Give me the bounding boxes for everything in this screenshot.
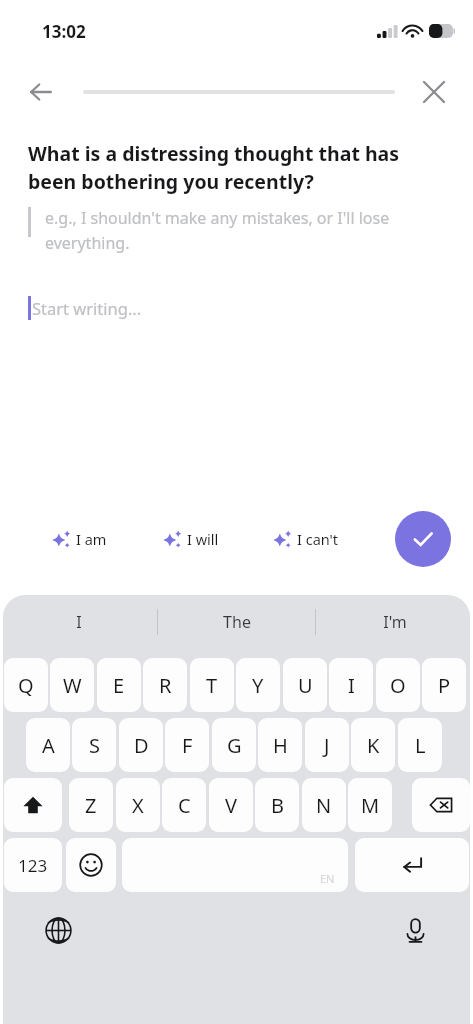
staticText: S [89, 732, 100, 759]
button[interactable]: I will [161, 523, 221, 555]
staticText: E [113, 672, 125, 699]
button[interactable]: The [158, 595, 315, 649]
staticText: I [348, 672, 355, 699]
staticText: X [132, 792, 144, 819]
button[interactable]: S [72, 718, 116, 772]
button[interactable]: P [422, 658, 466, 712]
button[interactable]: I [0, 595, 157, 649]
button[interactable]: B [255, 778, 299, 832]
staticText: M [361, 792, 380, 819]
button[interactable]: I'm [316, 595, 473, 649]
button[interactable]: F [165, 718, 209, 772]
staticText: Q [18, 672, 34, 699]
staticText: A [42, 732, 55, 759]
button[interactable]: 123 [4, 838, 62, 892]
button[interactable]: O [376, 658, 420, 712]
staticText: F [182, 732, 193, 759]
button[interactable]: Backspace [412, 778, 470, 832]
button[interactable]: I [329, 658, 373, 712]
button[interactable]: R [143, 658, 187, 712]
staticText: Y [252, 672, 264, 699]
button[interactable]: Back [18, 69, 64, 115]
staticText: I am [76, 529, 107, 549]
button[interactable]: I can't [271, 523, 341, 555]
staticText: 13:02 [42, 20, 86, 43]
staticText: Z [85, 792, 97, 819]
staticText: What is a distressing thought that has b… [28, 140, 445, 195]
button[interactable]: K [351, 718, 395, 772]
staticText: The [223, 611, 251, 633]
button[interactable]: J [305, 718, 349, 772]
button[interactable]: Space [122, 838, 348, 892]
staticText: K [367, 732, 380, 759]
button[interactable]: H [258, 718, 302, 772]
button[interactable]: W [50, 658, 94, 712]
button[interactable]: Shift [4, 778, 62, 832]
button[interactable]: M [348, 778, 392, 832]
staticText: J [324, 732, 330, 759]
button[interactable]: Close [411, 69, 457, 115]
button[interactable]: G [212, 718, 256, 772]
staticText: B [271, 792, 284, 819]
staticText: H [273, 732, 288, 759]
button[interactable]: E [97, 658, 141, 712]
staticText: N [316, 792, 332, 819]
staticText: V [225, 792, 237, 819]
button[interactable]: Emoji [66, 838, 116, 892]
staticText: R [159, 672, 172, 699]
staticText: P [438, 672, 451, 699]
staticText: I [76, 611, 82, 633]
staticText: L [415, 732, 426, 759]
button[interactable]: N [302, 778, 346, 832]
staticText: T [206, 672, 218, 699]
staticText: e.g., I shouldn't make any mistakes, or … [45, 207, 445, 253]
staticText: C [178, 792, 191, 819]
button[interactable]: X [116, 778, 160, 832]
button[interactable]: V [209, 778, 253, 832]
button[interactable]: Submit [395, 511, 451, 567]
button[interactable]: Enter [355, 838, 469, 892]
button[interactable]: Voice input [391, 906, 439, 954]
staticText: I can't [297, 529, 339, 549]
staticText: Start writing... [32, 297, 142, 319]
staticText: I will [187, 529, 219, 549]
button[interactable]: D [119, 718, 163, 772]
button[interactable]: Change language [34, 906, 82, 954]
staticText: O [390, 672, 406, 699]
button[interactable]: Q [4, 658, 48, 712]
button[interactable]: Y [236, 658, 280, 712]
staticText: I'm [383, 611, 407, 633]
button[interactable]: Z [69, 778, 113, 832]
staticText: EN [320, 871, 335, 886]
button[interactable]: U [283, 658, 327, 712]
button[interactable]: I am [50, 523, 109, 555]
staticText: 123 [18, 854, 48, 877]
button[interactable]: A [26, 718, 70, 772]
button[interactable]: L [398, 718, 442, 772]
button[interactable]: C [162, 778, 206, 832]
staticText: W [63, 672, 82, 699]
button[interactable]: T [190, 658, 234, 712]
staticText: G [227, 732, 242, 759]
staticText: U [298, 672, 313, 699]
staticText: D [134, 732, 149, 759]
